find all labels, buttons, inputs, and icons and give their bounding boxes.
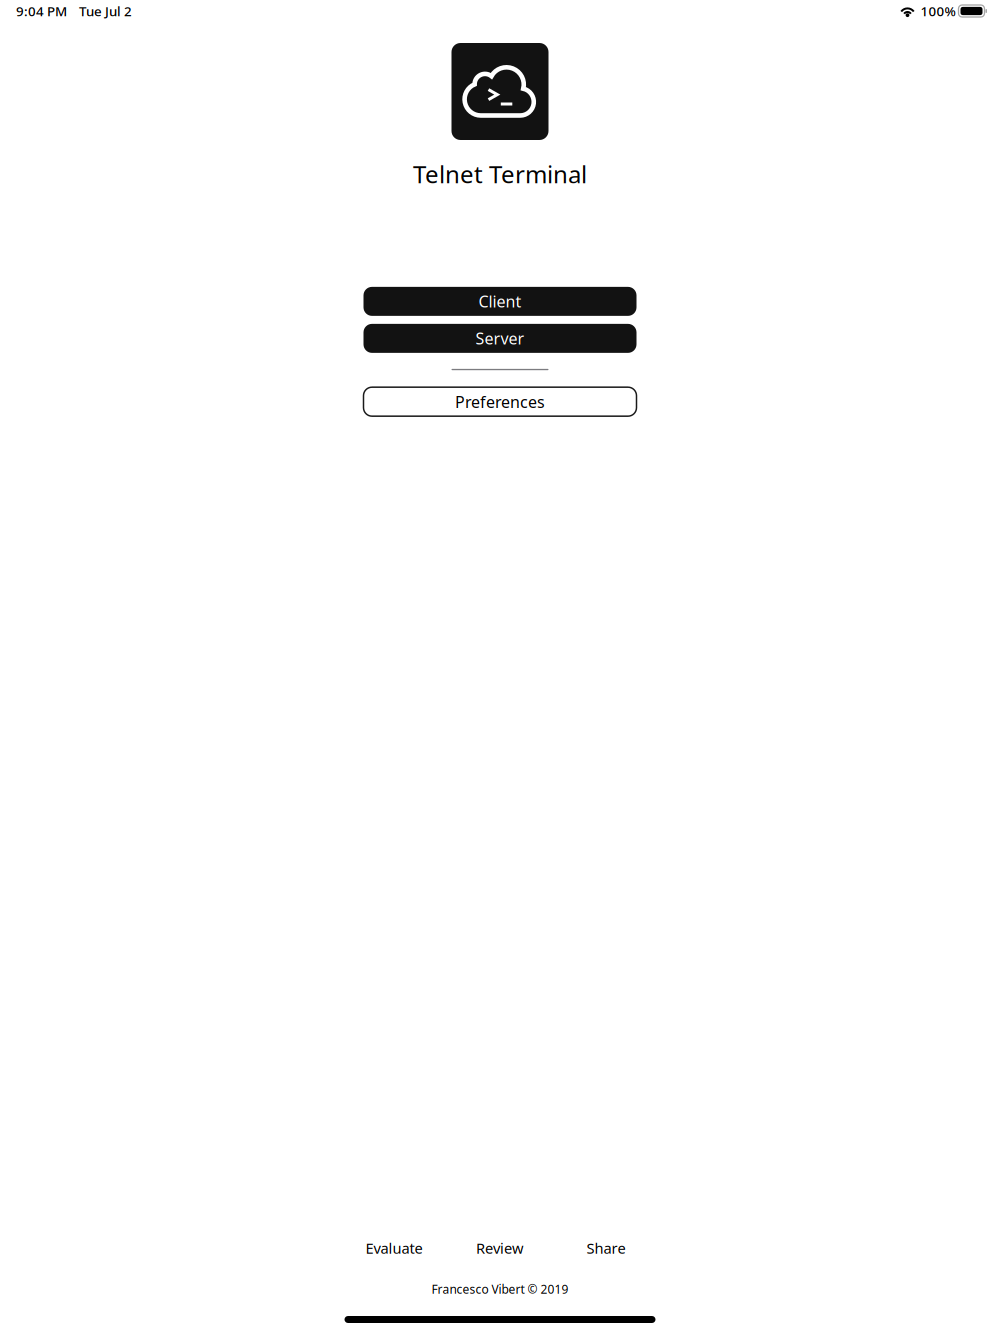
button[interactable]: Review (447, 1236, 553, 1260)
staticText: Tue Jul 2 (79, 2, 132, 20)
button[interactable]: Client (363, 287, 636, 316)
staticText: Share (586, 1238, 625, 1258)
button[interactable]: Share (553, 1236, 659, 1260)
button[interactable]: Preferences (363, 387, 636, 416)
staticText: Client (478, 291, 521, 312)
staticText: Telnet Terminal (413, 158, 587, 190)
button[interactable]: Evaluate (341, 1236, 447, 1260)
staticText: Review (476, 1238, 524, 1258)
staticText: 100% (920, 2, 955, 20)
staticText: Evaluate (365, 1238, 422, 1258)
staticText: 9:04 PM (16, 2, 67, 20)
staticText: Server (475, 328, 524, 349)
staticText: Preferences (455, 391, 545, 412)
staticText: Francesco Vibert © 2019 (431, 1281, 568, 1297)
button[interactable]: Server (363, 324, 636, 353)
